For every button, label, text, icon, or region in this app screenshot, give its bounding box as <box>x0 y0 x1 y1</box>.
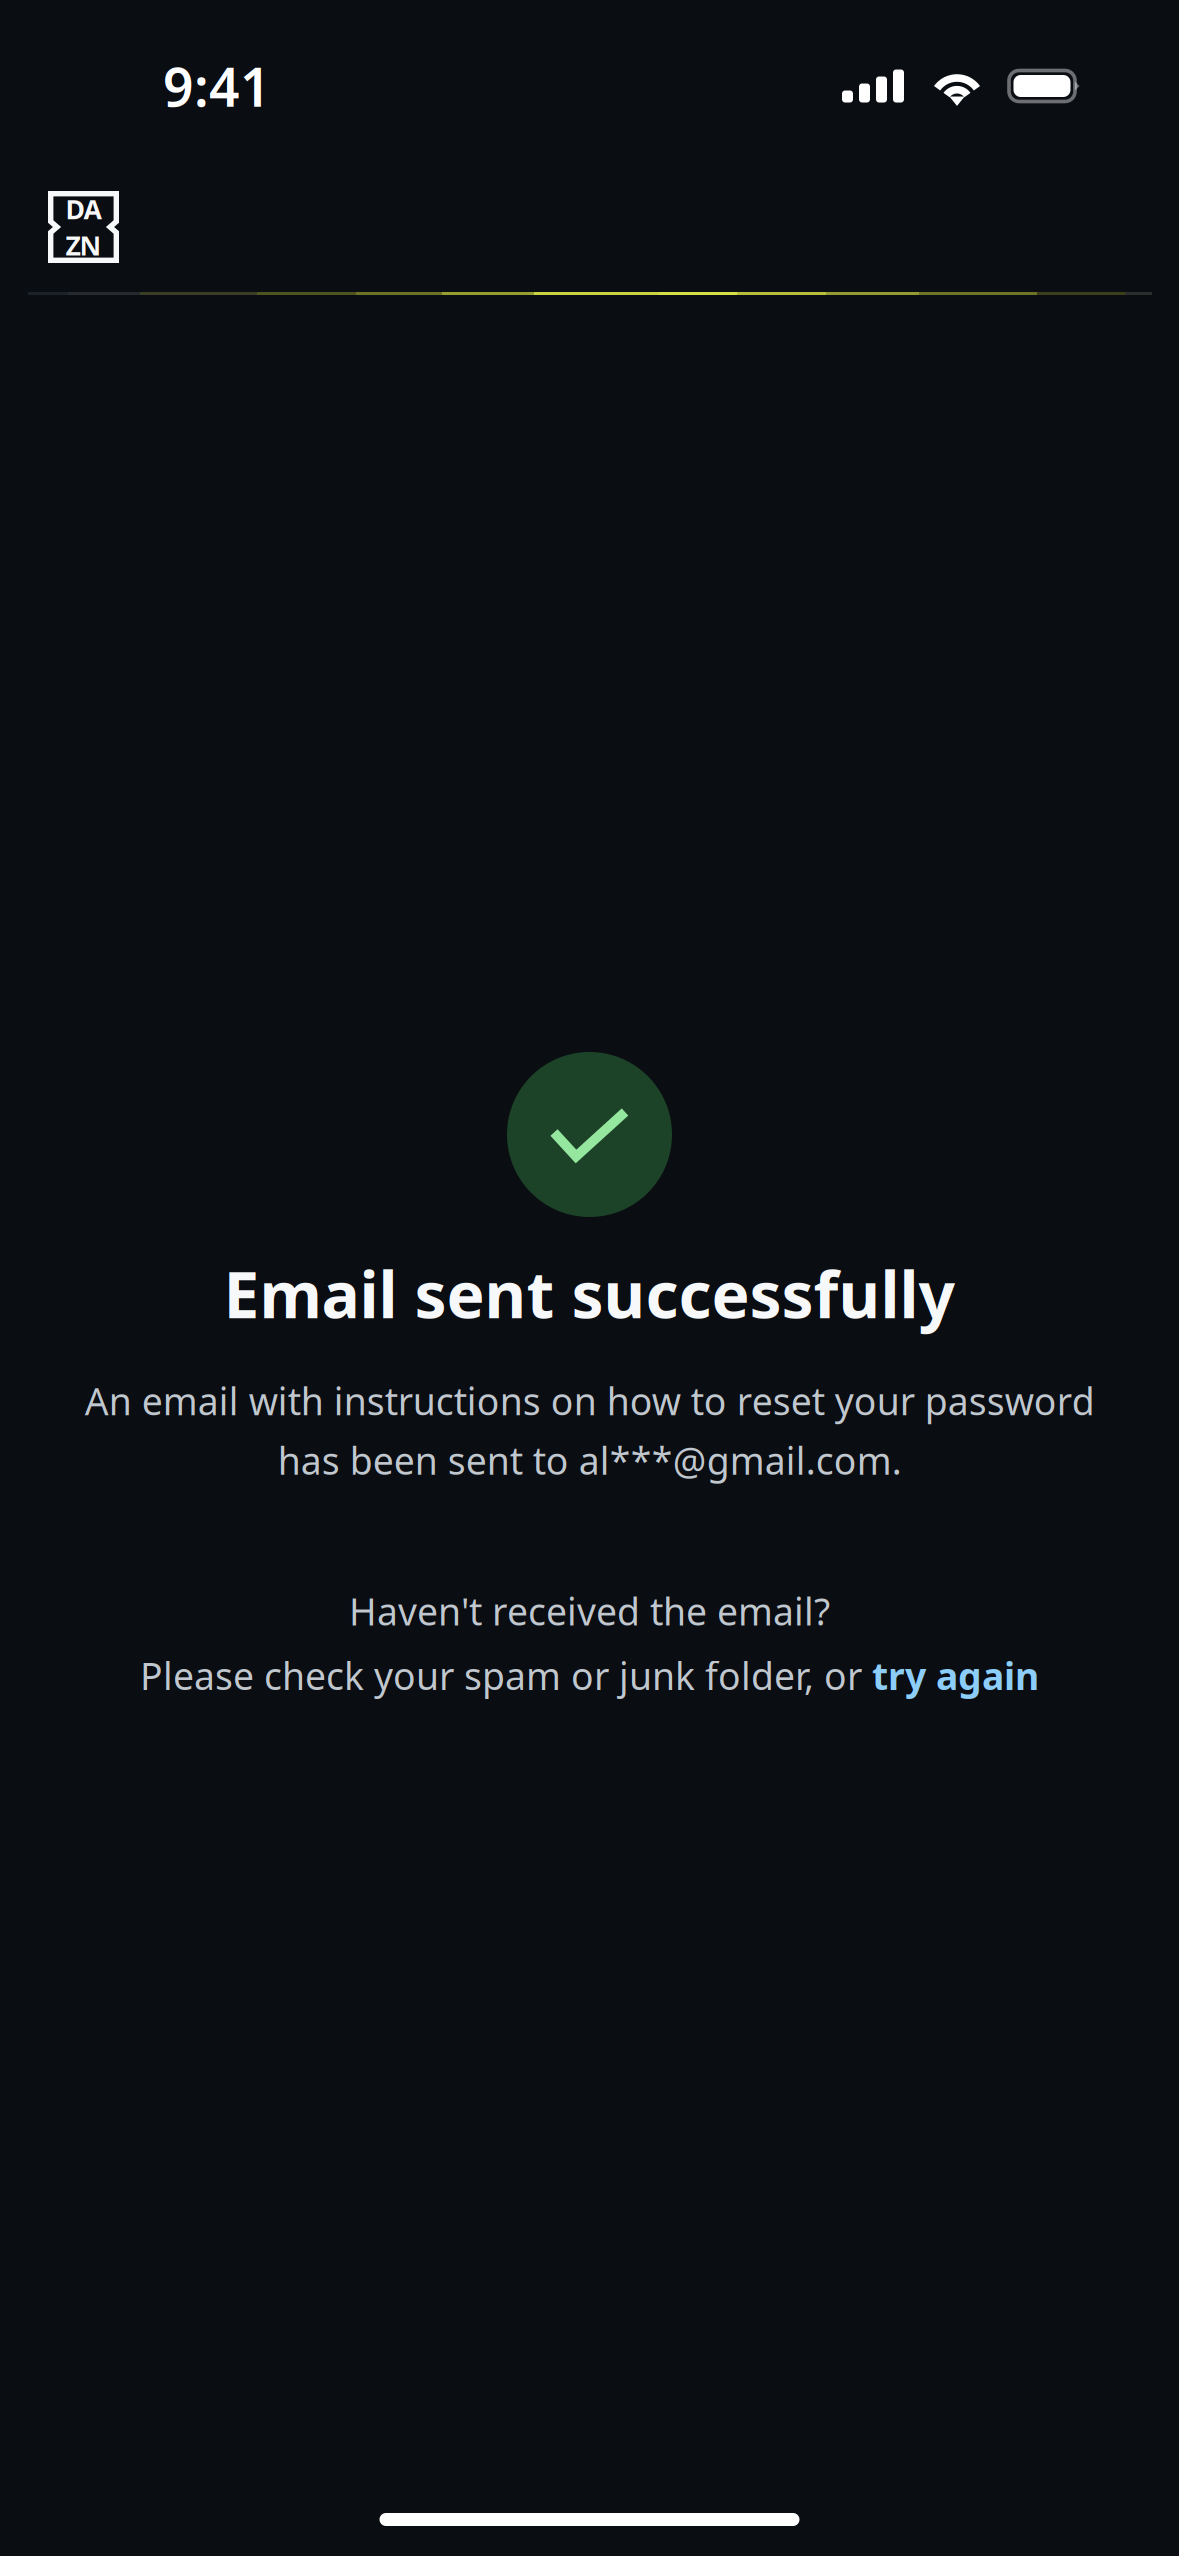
button[interactable]: try again <box>872 1651 1039 1700</box>
staticText: DA <box>65 191 102 226</box>
staticText: try again <box>872 1651 1039 1700</box>
button[interactable]: DAZN <box>48 191 119 263</box>
staticText: 9:41 <box>163 51 271 121</box>
staticText: Please check your spam or junk folder, o… <box>140 1651 872 1700</box>
staticText: Email sent successfully <box>223 1251 955 1336</box>
staticText: An email with instructions on how to res… <box>84 1376 1094 1485</box>
staticText: ZN <box>65 227 102 263</box>
staticText: Haven't received the email? <box>349 1586 830 1636</box>
